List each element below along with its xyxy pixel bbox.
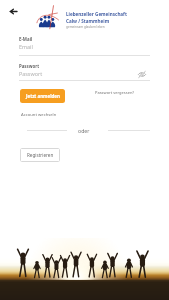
staticText: Passwort <box>19 63 40 69</box>
staticText: Passwort vergessen? <box>95 90 135 95</box>
staticText: Liebenzeller Gemeinschaft <box>66 11 127 17</box>
button[interactable]: Registrieren <box>20 148 60 162</box>
button[interactable]: Account wechseln <box>21 112 57 118</box>
button[interactable]: Passwort vergessen? <box>95 90 135 95</box>
staticText: Registrieren <box>27 152 54 158</box>
staticText: gemeinsam glauben leben <box>66 25 105 29</box>
button[interactable]: Back <box>5 3 21 19</box>
staticText: Calw / Stammheim <box>66 18 110 24</box>
staticText: E-Mail <box>19 36 33 42</box>
staticText: Jetzt anmelden <box>26 93 60 99</box>
staticText: oder <box>78 127 90 134</box>
staticText: Account wechseln <box>21 112 57 118</box>
staticText: Passwort <box>19 70 43 77</box>
button[interactable]: Jetzt anmelden <box>20 89 65 103</box>
staticText: Email <box>19 43 33 50</box>
button[interactable]: Show password <box>136 68 148 80</box>
